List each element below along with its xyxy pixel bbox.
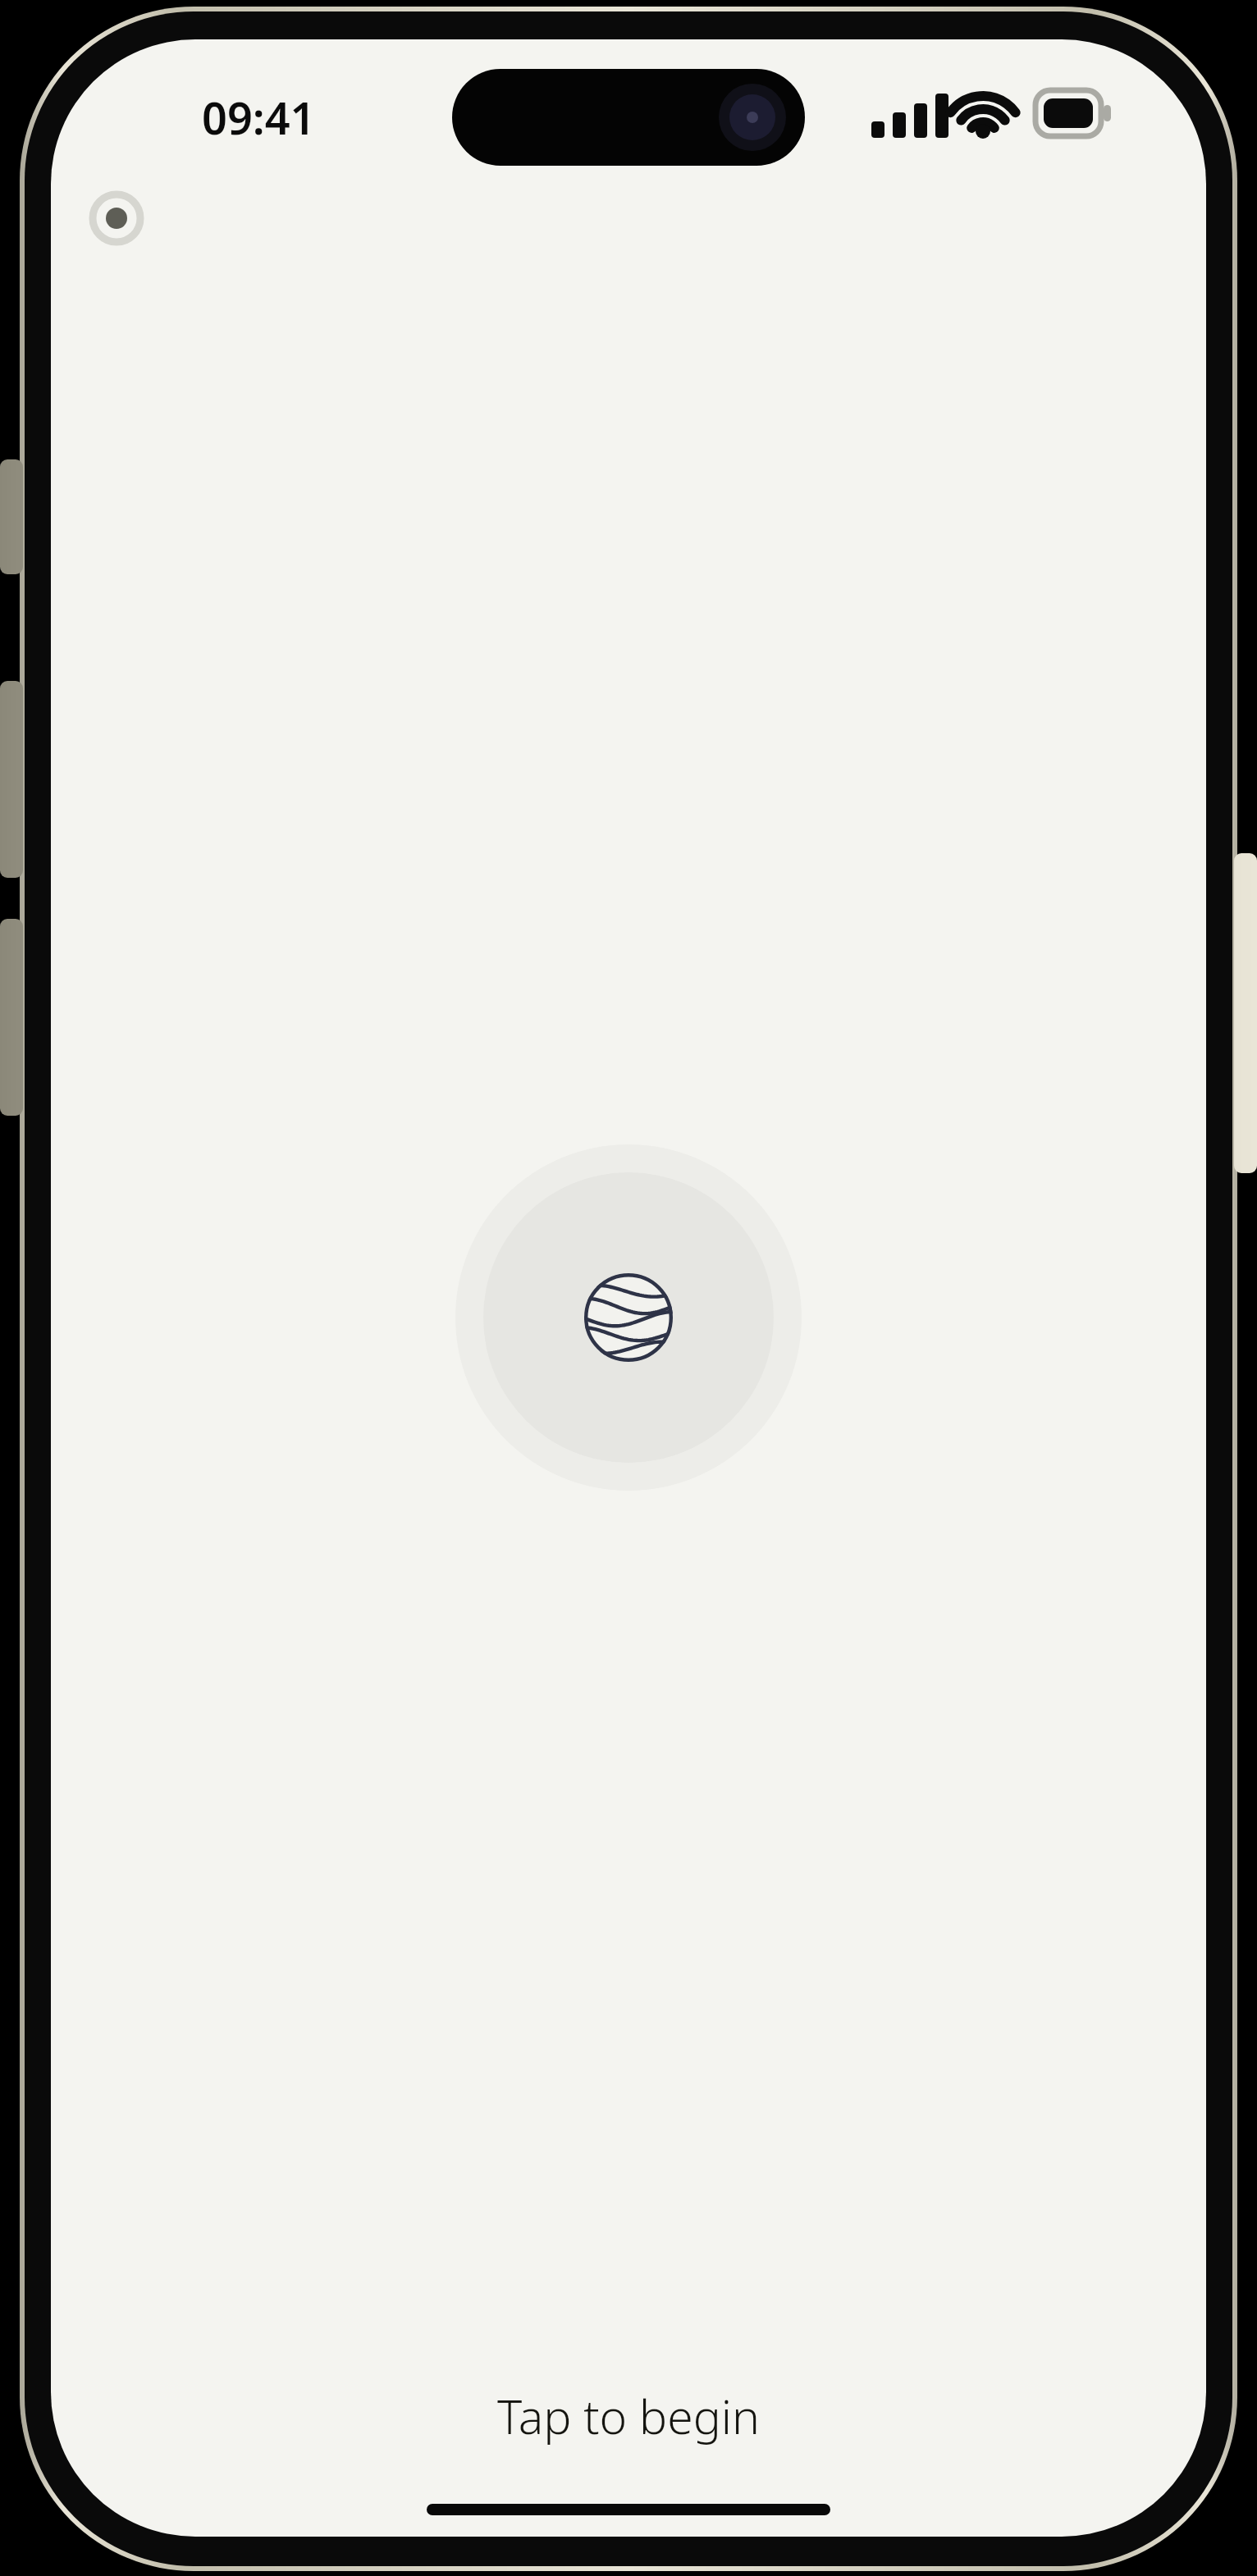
staticText: Tap to begin bbox=[497, 2384, 760, 2448]
button[interactable]: Begin bbox=[455, 1144, 802, 1491]
button[interactable]: Tap to begin bbox=[497, 2384, 760, 2448]
button[interactable]: Recording indicator bbox=[85, 187, 148, 249]
staticText: 09:41 bbox=[202, 87, 316, 148]
